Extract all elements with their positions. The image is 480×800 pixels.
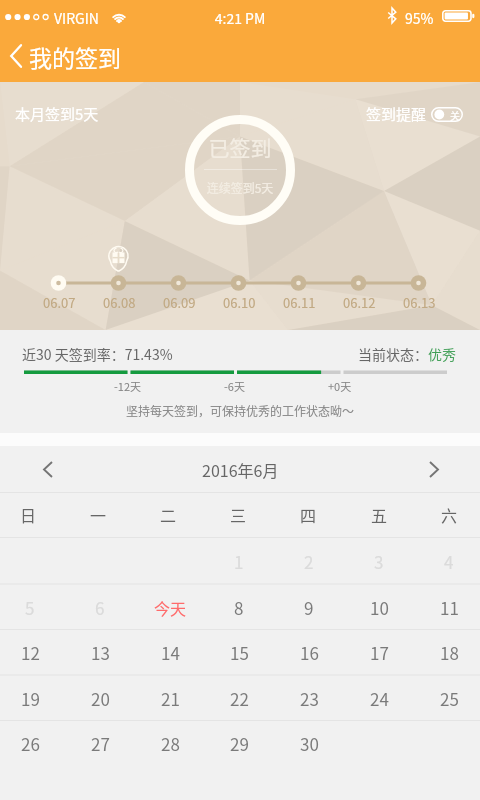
button[interactable]: 28: [136, 720, 204, 766]
button[interactable]: 我的签到: [0, 30, 135, 82]
staticText: -12天: [114, 378, 142, 394]
button[interactable]: Previous month: [25, 446, 71, 492]
staticText: 06.12: [343, 293, 376, 312]
staticText: 25: [440, 686, 459, 711]
button[interactable]: 8: [205, 584, 273, 630]
staticText: 23: [300, 686, 319, 711]
staticText: 27: [91, 731, 110, 756]
button[interactable]: 5: [0, 584, 64, 630]
staticText: 优秀: [428, 344, 456, 364]
staticText: +0天: [328, 378, 352, 394]
staticText: 29: [230, 731, 249, 756]
staticText: 一: [90, 503, 107, 526]
staticText: 22: [230, 686, 249, 711]
button[interactable]: 29: [205, 720, 273, 766]
button[interactable]: 今天: [136, 584, 204, 630]
staticText: 24: [370, 686, 389, 711]
staticText: 4:21 PM: [0, 8, 480, 28]
button[interactable]: 22: [205, 675, 273, 721]
button[interactable]: 27: [66, 720, 134, 766]
staticText: 五: [371, 503, 388, 526]
staticText: 近30 天签到率：71.43%: [22, 344, 173, 364]
button[interactable]: 13: [66, 629, 134, 675]
button[interactable]: 19: [0, 675, 64, 721]
staticText: 18: [440, 640, 459, 665]
staticText: 1: [234, 549, 244, 574]
staticText: 我的签到: [29, 40, 121, 73]
staticText: 二: [160, 503, 177, 526]
staticText: 30: [300, 731, 319, 756]
staticText: 三: [230, 503, 247, 526]
staticText: 06.11: [283, 293, 316, 312]
button[interactable]: 30: [275, 720, 343, 766]
staticText: 坚持每天签到，可保持优秀的工作状态呦～: [0, 402, 480, 419]
button[interactable]: 17: [345, 629, 413, 675]
staticText: 28: [161, 731, 180, 756]
button[interactable]: 15: [205, 629, 273, 675]
staticText: -6天: [224, 378, 245, 394]
button[interactable]: 26: [0, 720, 64, 766]
staticText: 12: [21, 640, 40, 665]
staticText: 06.13: [403, 293, 436, 312]
button[interactable]: 9: [275, 584, 343, 630]
staticText: 15: [230, 640, 249, 665]
staticText: 关: [450, 108, 460, 122]
staticText: 10: [370, 595, 389, 620]
button[interactable]: 18: [415, 629, 480, 675]
staticText: 今天: [154, 596, 187, 619]
button[interactable]: 签到提醒: [366, 103, 463, 125]
staticText: 20: [91, 686, 110, 711]
button[interactable]: 25: [415, 675, 480, 721]
button[interactable]: 10: [345, 584, 413, 630]
button[interactable]: 21: [136, 675, 204, 721]
button[interactable]: 16: [275, 629, 343, 675]
staticText: 95%: [405, 8, 434, 28]
staticText: 当前状态：: [358, 344, 428, 364]
staticText: 06.08: [103, 293, 136, 312]
staticText: 9: [304, 595, 314, 620]
staticText: 6: [95, 595, 105, 620]
staticText: 17: [370, 640, 389, 665]
staticText: 四: [300, 503, 317, 526]
staticText: 3: [374, 549, 384, 574]
staticText: 8: [234, 595, 244, 620]
staticText: 4: [444, 549, 454, 574]
button[interactable]: 24: [345, 675, 413, 721]
staticText: 日: [20, 503, 37, 526]
button[interactable]: 12: [0, 629, 64, 675]
staticText: 2016年6月: [202, 458, 279, 481]
staticText: 14: [161, 640, 180, 665]
button[interactable]: 20: [66, 675, 134, 721]
button[interactable]: 23: [275, 675, 343, 721]
button[interactable]: 6: [66, 584, 134, 630]
staticText: 06.10: [223, 293, 256, 312]
staticText: 2: [304, 549, 314, 574]
staticText: 11: [440, 595, 459, 620]
staticText: 16: [300, 640, 319, 665]
staticText: 签到提醒: [366, 103, 427, 125]
staticText: 5: [25, 595, 35, 620]
button[interactable]: 11: [415, 584, 480, 630]
staticText: VIRGIN: [54, 8, 99, 28]
staticText: 26: [21, 731, 40, 756]
staticText: 本月签到5天: [15, 103, 99, 125]
staticText: 19: [21, 686, 40, 711]
staticText: 已签到: [185, 132, 295, 162]
staticText: 13: [91, 640, 110, 665]
button[interactable]: 14: [136, 629, 204, 675]
staticText: 21: [161, 686, 180, 711]
staticText: 06.07: [43, 293, 76, 312]
staticText: 06.09: [163, 293, 196, 312]
staticText: 连续签到5天: [185, 179, 295, 196]
button[interactable]: Next month: [411, 446, 457, 492]
staticText: 六: [441, 503, 458, 526]
